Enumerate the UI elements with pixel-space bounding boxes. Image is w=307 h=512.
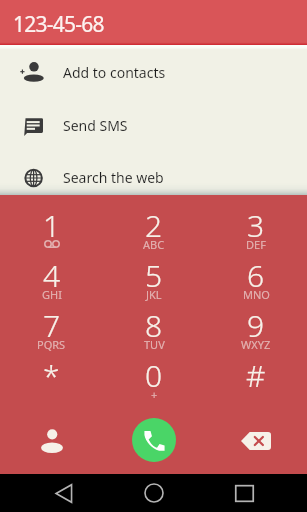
button[interactable]: 0	[103, 357, 205, 407]
button[interactable]: 5	[103, 257, 205, 307]
staticText: MNO	[243, 287, 270, 302]
staticText: ABC	[143, 237, 165, 252]
staticText: 2	[145, 205, 163, 246]
staticText: 3	[247, 205, 265, 246]
staticText: 0	[145, 355, 163, 396]
staticText: *	[43, 355, 60, 396]
button[interactable]: Delete	[205, 407, 307, 474]
staticText: PQRS	[37, 337, 66, 352]
button[interactable]: 1	[0, 207, 103, 257]
staticText: Add to contacts	[63, 63, 166, 82]
staticText: WXYZ	[241, 337, 271, 352]
button[interactable]: *	[0, 357, 103, 407]
staticText: 123-45-68	[13, 10, 104, 39]
button[interactable]: 7	[0, 307, 103, 357]
staticText: GHI	[42, 287, 62, 302]
staticText: 6	[247, 255, 265, 296]
button[interactable]: 4	[0, 257, 103, 307]
button[interactable]: 8	[103, 307, 205, 357]
button[interactable]: 123-45-68	[0, 0, 307, 45]
button[interactable]: 3	[205, 207, 307, 257]
button[interactable]: Contacts	[0, 407, 103, 474]
button[interactable]: Add to contacts	[0, 46, 307, 99]
staticText: 8	[145, 305, 163, 346]
button[interactable]: #	[205, 357, 307, 407]
staticText: 5	[145, 255, 163, 296]
staticText: 7	[43, 305, 61, 346]
button[interactable]: Back	[41, 474, 87, 512]
staticText: 4	[43, 255, 61, 296]
staticText: Send SMS	[63, 116, 128, 135]
button[interactable]: Home	[131, 474, 177, 512]
staticText: TUV	[144, 337, 165, 352]
staticText: +	[151, 387, 158, 402]
button[interactable]: 6	[205, 257, 307, 307]
staticText: Search the web	[63, 168, 164, 187]
button[interactable]: Call	[103, 407, 205, 474]
button[interactable]: Search the web	[0, 151, 307, 195]
staticText: 1	[43, 205, 61, 246]
button[interactable]: Send SMS	[0, 99, 307, 152]
button[interactable]: 9	[205, 307, 307, 357]
button[interactable]: Recents	[221, 474, 267, 512]
staticText: DEF	[246, 237, 266, 252]
button[interactable]: 2	[103, 207, 205, 257]
staticText: JKL	[146, 287, 162, 302]
staticText: 9	[247, 305, 265, 346]
staticText: #	[246, 355, 266, 396]
